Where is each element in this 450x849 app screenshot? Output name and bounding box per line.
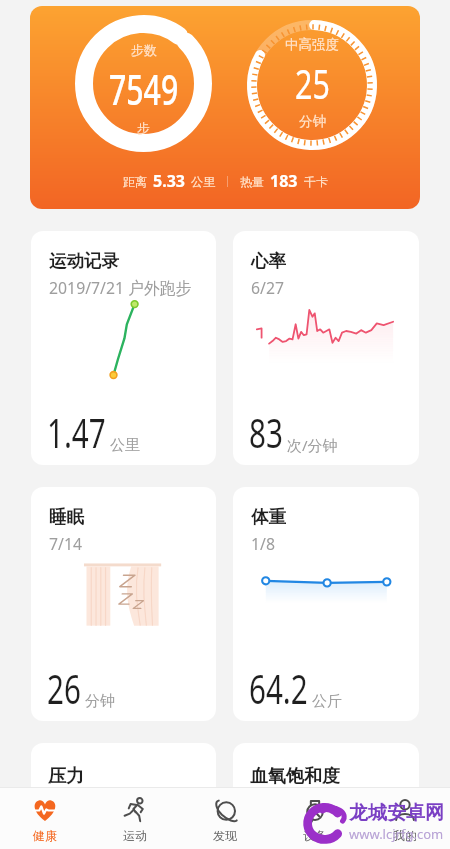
button[interactable]: 设备	[270, 788, 360, 849]
staticText: 距离	[123, 174, 147, 189]
staticText: 我的	[393, 828, 417, 843]
staticText: 6/27	[251, 276, 284, 299]
button[interactable]: 运动	[90, 788, 180, 849]
staticText: 分钟	[299, 113, 326, 130]
staticText: 心率	[251, 250, 286, 272]
staticText: 睡眠	[49, 506, 84, 528]
staticText: 压力	[48, 765, 84, 788]
staticText: 热量	[240, 174, 264, 189]
button[interactable]: 血氧饱和度	[233, 743, 419, 823]
staticText: 次/分钟	[287, 435, 338, 455]
staticText: 64.2	[249, 661, 308, 715]
staticText: 7/14	[49, 532, 82, 555]
staticText: 龙城安卓网	[349, 801, 444, 825]
button[interactable]: 运动记录	[31, 231, 216, 465]
staticText: 运动	[123, 828, 147, 843]
staticText: 25	[295, 56, 330, 110]
staticText: 设备	[303, 828, 327, 843]
staticText: 步数	[131, 42, 157, 58]
staticText: 5.33	[153, 170, 185, 192]
staticText: 26	[47, 661, 81, 715]
staticText: 血氧饱和度	[250, 765, 340, 788]
staticText: 千卡	[304, 174, 328, 189]
staticText: 公里	[110, 436, 140, 455]
staticText: 发现	[213, 828, 237, 843]
staticText: 分钟	[85, 692, 115, 711]
staticText: 83	[249, 405, 283, 459]
staticText: 183	[270, 170, 298, 192]
button[interactable]: 发现	[180, 788, 270, 849]
button[interactable]: 心率	[233, 231, 419, 465]
staticText: 运动记录	[49, 250, 119, 272]
staticText: 健康	[33, 828, 57, 843]
staticText: 7549	[109, 60, 179, 117]
staticText: 2019/7/21 户外跑步	[49, 276, 192, 299]
button[interactable]: 睡眠	[31, 487, 216, 721]
staticText: 1.47	[47, 405, 106, 459]
button[interactable]: 步数	[30, 6, 420, 209]
staticText: 体重	[251, 506, 286, 528]
button[interactable]: 我的	[360, 788, 450, 849]
staticText: www.lcjrfg.com	[349, 825, 444, 843]
staticText: 公里	[191, 174, 215, 189]
button[interactable]: 健康	[0, 788, 90, 849]
staticText: 中高强度	[285, 36, 339, 53]
staticText: 公斤	[312, 692, 342, 711]
staticText: 1/8	[251, 532, 275, 555]
button[interactable]: 体重	[233, 487, 419, 721]
button[interactable]: 压力	[31, 743, 216, 823]
staticText: 步	[137, 120, 150, 136]
